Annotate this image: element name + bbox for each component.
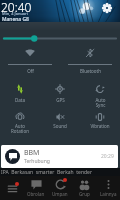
staticText: 20:29 [101,153,114,160]
button[interactable]: Settings [102,3,112,13]
staticText: Sound [53,123,67,129]
button[interactable]: Sound [40,108,80,136]
staticText: Min, 4 Januari [2,11,28,16]
staticText: Bluetooth [80,68,101,74]
button[interactable]: BBM [1,145,118,168]
staticText: Auto Sync [95,97,106,108]
staticText: Terhubung [24,158,50,165]
staticText: Grup [79,191,90,197]
button[interactable]: Auto Rotation [0,108,40,136]
staticText: GPS [56,97,65,103]
button[interactable]: Data [0,80,40,108]
button[interactable]: Umpan [48,176,72,200]
staticText: 20:40 [1,0,32,15]
staticText: IPA Berkasan smarter Berkah tender [1,169,92,176]
button[interactable]: Grup [72,176,96,200]
staticText: Auto Rotation [11,123,29,134]
staticText: Lainnya [100,191,117,197]
button[interactable]: Obrolan [24,176,48,200]
staticText: Umpan [52,191,68,197]
button[interactable]: GPS [40,80,80,108]
staticText: Obrolan [27,191,45,197]
staticText: Data [15,97,25,103]
button[interactable]: Auto Sync [80,80,120,108]
button[interactable]: Lainnya [96,176,120,200]
button[interactable]: Off [0,44,60,80]
button[interactable]: Menu [0,176,24,200]
staticText: Vibration [90,123,110,129]
button[interactable]: Bluetooth [60,44,120,80]
staticText: BBM [24,148,40,158]
button[interactable]: Vibration [80,108,120,136]
staticText: Off [27,68,34,74]
staticText: Manena G8 [2,16,29,23]
